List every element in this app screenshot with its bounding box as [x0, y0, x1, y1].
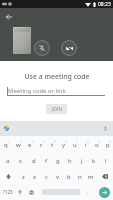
- button[interactable]: Back: [2, 10, 15, 23]
- staticText: .: [87, 189, 89, 196]
- button[interactable]: v: [52, 168, 63, 184]
- button[interactable]: JOIN: [46, 104, 67, 114]
- button[interactable]: d: [27, 152, 40, 168]
- button[interactable]: 1: [0, 136, 12, 152]
- button[interactable]: n: [74, 168, 85, 184]
- button[interactable]: 0: [102, 136, 113, 152]
- button[interactable]: j: [76, 152, 88, 168]
- staticText: g: [56, 157, 60, 165]
- button[interactable]: m: [85, 168, 96, 184]
- staticText: Use a meeting code: [24, 72, 90, 82]
- button[interactable]: 9: [91, 136, 102, 152]
- button[interactable]: x: [29, 168, 41, 184]
- staticText: 1: [8, 139, 11, 144]
- staticText: o: [95, 141, 99, 149]
- button[interactable]: Voice input: [101, 124, 110, 133]
- staticText: 2: [20, 139, 23, 144]
- staticText: z: [22, 173, 25, 181]
- staticText: u: [73, 141, 77, 149]
- staticText: f: [45, 157, 48, 165]
- button[interactable]: b: [63, 168, 74, 184]
- button[interactable]: f: [40, 152, 52, 168]
- button[interactable]: 2: [12, 136, 24, 152]
- button[interactable]: Turn off camera: [61, 40, 77, 56]
- button[interactable]: s: [14, 152, 27, 168]
- staticText: b: [67, 173, 71, 181]
- staticText: JOIN: [52, 106, 62, 112]
- staticText: 08:23: [98, 1, 111, 8]
- staticText: m: [88, 173, 94, 181]
- button[interactable]: z: [17, 168, 29, 184]
- staticText: y: [62, 141, 66, 149]
- staticText: 0: [109, 139, 112, 144]
- button[interactable]: Shift: [0, 168, 17, 184]
- button[interactable]: Change keyboard language: [25, 184, 37, 200]
- button[interactable]: c: [41, 168, 52, 184]
- button[interactable]: h: [64, 152, 76, 168]
- staticText: c: [45, 173, 48, 181]
- staticText: p: [106, 141, 110, 149]
- button[interactable]: Enter: [99, 187, 110, 198]
- staticText: q: [4, 141, 8, 149]
- staticText: h: [68, 157, 72, 165]
- staticText: e: [28, 141, 32, 149]
- button[interactable]: a: [1, 152, 14, 168]
- button[interactable]: Stickers: [14, 184, 26, 200]
- staticText: 4: [43, 139, 46, 144]
- button[interactable]: 5: [47, 136, 58, 152]
- button[interactable]: l: [100, 152, 112, 168]
- staticText: 6: [65, 139, 68, 144]
- button[interactable]: Backspace: [96, 168, 113, 184]
- staticText: 5: [54, 139, 57, 144]
- button[interactable]: .: [81, 184, 95, 200]
- staticText: j: [81, 157, 83, 165]
- button[interactable]: 8: [80, 136, 91, 152]
- button[interactable]: g: [52, 152, 64, 168]
- button[interactable]: 7: [69, 136, 80, 152]
- staticText: k: [92, 157, 96, 165]
- staticText: r: [40, 141, 43, 149]
- staticText: Meeting code or link: [8, 87, 66, 95]
- staticText: 8: [87, 139, 90, 144]
- button[interactable]: ?123: [0, 184, 16, 200]
- staticText: t: [51, 141, 54, 149]
- staticText: a: [6, 157, 10, 165]
- button[interactable]: 6: [58, 136, 69, 152]
- button[interactable]: Meeting code or link: [7, 85, 105, 96]
- staticText: l: [105, 157, 107, 165]
- staticText: x: [33, 173, 37, 181]
- button[interactable]: Turn off microphone: [34, 40, 50, 56]
- staticText: 7: [76, 139, 79, 144]
- staticText: v: [56, 173, 60, 181]
- staticText: s: [19, 157, 22, 165]
- staticText: 3: [32, 139, 35, 144]
- staticText: n: [78, 173, 82, 181]
- button[interactable]: 3: [24, 136, 36, 152]
- staticText: w: [16, 141, 21, 149]
- button[interactable]: Google search: [2, 124, 11, 133]
- staticText: d: [32, 157, 36, 165]
- staticText: ?123: [3, 189, 13, 195]
- staticText: i: [85, 141, 87, 149]
- button[interactable]: 4: [36, 136, 47, 152]
- staticText: 9: [98, 139, 101, 144]
- button[interactable]: k: [88, 152, 100, 168]
